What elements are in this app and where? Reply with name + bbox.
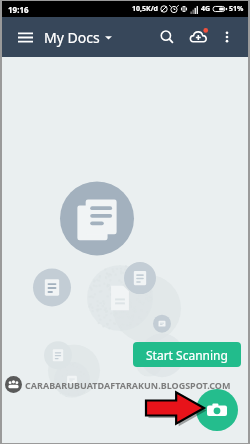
button[interactable]: More options <box>214 24 240 50</box>
staticText: 4G <box>201 4 211 14</box>
staticText: CARABARUBUATDAFTARAKUN.BLOGSPOT.COM <box>25 379 231 391</box>
button[interactable]: My Docs <box>44 28 112 47</box>
button[interactable]: Start Scanning <box>133 342 241 367</box>
button[interactable]: Search <box>153 23 181 51</box>
staticText: 19:16 <box>8 4 29 15</box>
button[interactable]: Scan with camera <box>196 389 238 431</box>
staticText: My Docs <box>44 28 100 47</box>
staticText: 51% <box>229 4 244 14</box>
button[interactable]: Open navigation drawer <box>10 22 40 52</box>
button[interactable]: Upload to cloud <box>183 22 213 52</box>
staticText: Start Scanning <box>146 347 228 363</box>
staticText: 10,5K/d <box>132 4 158 14</box>
